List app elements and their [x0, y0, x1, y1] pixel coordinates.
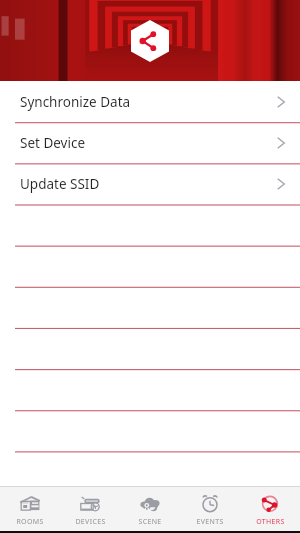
- button[interactable]: ROOMS: [0, 487, 60, 531]
- staticText: DEVICES: [75, 517, 106, 527]
- staticText: Synchronize Data: [20, 93, 131, 111]
- staticText: SCENE: [138, 517, 162, 527]
- button[interactable]: EVENTS: [180, 487, 240, 531]
- staticText: OTHERS: [256, 517, 285, 527]
- staticText: EVENTS: [196, 517, 224, 527]
- button[interactable]: Update SSID: [0, 163, 300, 204]
- button[interactable]: Set Device: [0, 122, 300, 163]
- button[interactable]: DEVICES: [60, 487, 120, 531]
- staticText: Update SSID: [20, 175, 100, 193]
- staticText: ROOMS: [16, 517, 44, 527]
- button[interactable]: Synchronize Data: [0, 81, 300, 122]
- button[interactable]: SCENE: [120, 487, 180, 531]
- button[interactable]: OTHERS: [240, 487, 300, 531]
- staticText: Set Device: [20, 134, 86, 152]
